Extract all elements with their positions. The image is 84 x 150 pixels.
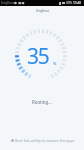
button[interactable]: Root has ability to remove the apps [0, 134, 84, 146]
staticText: KingRoot [1, 1, 14, 5]
staticText: Rooting... [32, 99, 52, 105]
staticText: 35 [27, 42, 49, 71]
staticText: KingRoot [36, 9, 49, 13]
staticText: 13:40 [73, 1, 82, 5]
staticText: 30% [66, 1, 72, 5]
staticText: Root has ability to remove the apps [15, 138, 75, 143]
staticText: % [53, 61, 57, 67]
